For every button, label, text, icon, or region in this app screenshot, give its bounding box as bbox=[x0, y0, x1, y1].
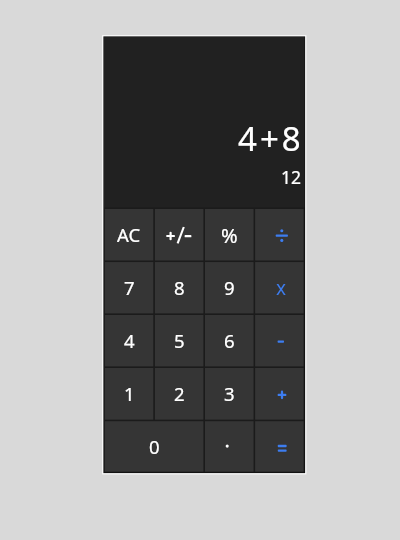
button[interactable]: Plus minus bbox=[154, 208, 204, 261]
button[interactable]: Minus bbox=[254, 314, 304, 367]
button[interactable]: Four bbox=[104, 314, 154, 367]
staticText: x bbox=[276, 275, 287, 301]
button[interactable]: Five bbox=[154, 314, 204, 367]
staticText: 5 bbox=[174, 328, 185, 353]
button[interactable]: Seven bbox=[104, 261, 154, 314]
button[interactable]: All clear bbox=[104, 208, 154, 261]
staticText: 8 bbox=[174, 275, 185, 300]
staticText: 7 bbox=[124, 275, 135, 300]
button[interactable]: Two bbox=[154, 367, 204, 420]
staticText: 4 bbox=[124, 328, 135, 353]
staticText: AC bbox=[117, 222, 141, 247]
button[interactable]: Eight bbox=[154, 261, 204, 314]
button[interactable]: Three bbox=[204, 367, 254, 420]
staticText: 0 bbox=[149, 434, 160, 459]
staticText: 4+8 bbox=[238, 116, 304, 161]
button[interactable]: Nine bbox=[204, 261, 254, 314]
staticText: 9 bbox=[224, 275, 235, 300]
button[interactable]: Plus bbox=[254, 367, 304, 420]
button[interactable]: Percent bbox=[204, 208, 254, 261]
button[interactable]: Equals bbox=[254, 420, 304, 472]
staticText: 12 bbox=[281, 165, 302, 189]
staticText: 2 bbox=[174, 381, 185, 406]
staticText: % bbox=[221, 222, 238, 249]
button[interactable]: Zero bbox=[104, 420, 204, 472]
button[interactable]: Multiply bbox=[254, 261, 304, 314]
button[interactable]: One bbox=[104, 367, 154, 420]
staticText: 1 bbox=[124, 381, 135, 406]
button[interactable]: Decimal point bbox=[204, 420, 254, 472]
button[interactable]: Six bbox=[204, 314, 254, 367]
staticText: 6 bbox=[224, 328, 235, 353]
button[interactable]: Divide bbox=[254, 208, 304, 261]
staticText: 3 bbox=[224, 381, 235, 406]
